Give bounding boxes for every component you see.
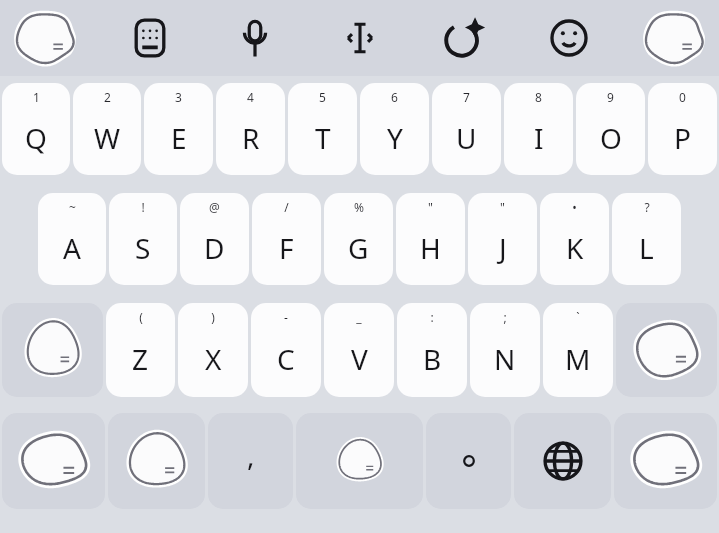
- staticText: Q: [25, 119, 47, 157]
- button[interactable]: /: [252, 193, 321, 285]
- staticText: 5: [319, 89, 326, 105]
- staticText: O: [600, 119, 622, 157]
- button[interactable]: Backspace: [616, 303, 717, 397]
- staticText: P: [674, 119, 691, 157]
- staticText: G: [348, 229, 369, 267]
- button[interactable]: •: [540, 193, 609, 285]
- staticText: 3: [175, 89, 182, 105]
- staticText: !: [141, 199, 145, 215]
- button[interactable]: Sticker suggestion: [643, 7, 705, 69]
- staticText: •: [572, 199, 577, 215]
- staticText: ): [211, 309, 215, 325]
- staticText: L: [639, 229, 654, 267]
- button[interactable]: :: [397, 303, 467, 397]
- staticText: J: [499, 229, 507, 267]
- staticText: :: [430, 309, 434, 325]
- button[interactable]: 9: [576, 83, 645, 175]
- staticText: A: [63, 229, 81, 267]
- button[interactable]: ": [468, 193, 537, 285]
- button[interactable]: -: [251, 303, 321, 397]
- staticText: 1: [33, 89, 40, 105]
- button[interactable]: 1: [2, 83, 70, 175]
- staticText: K: [566, 229, 584, 267]
- staticText: I: [534, 119, 544, 157]
- staticText: 0: [679, 89, 686, 105]
- staticText: 2: [104, 89, 111, 105]
- staticText: 8: [535, 89, 542, 105]
- staticText: %: [354, 199, 364, 215]
- button[interactable]: 2: [73, 83, 141, 175]
- button[interactable]: Voice input: [224, 7, 286, 69]
- button[interactable]: 5: [288, 83, 357, 175]
- staticText: /: [284, 199, 289, 215]
- staticText: D: [204, 229, 225, 267]
- button[interactable]: Text editing: [329, 7, 391, 69]
- button[interactable]: Enter: [614, 413, 717, 509]
- staticText: E: [171, 119, 187, 157]
- button[interactable]: ?: [612, 193, 681, 285]
- staticText: 6: [391, 89, 398, 105]
- button[interactable]: %: [324, 193, 393, 285]
- staticText: 4: [247, 89, 254, 105]
- button[interactable]: Emoji keyboard: [108, 413, 205, 509]
- staticText: (: [139, 309, 143, 325]
- staticText: H: [420, 229, 441, 267]
- staticText: R: [242, 119, 260, 157]
- staticText: 9: [607, 89, 614, 105]
- button[interactable]: 8: [504, 83, 573, 175]
- staticText: S: [135, 229, 151, 267]
- button[interactable]: Smart compose: [433, 7, 495, 69]
- staticText: C: [277, 340, 295, 378]
- button[interactable]: Change language: [514, 413, 611, 509]
- button[interactable]: @: [180, 193, 249, 285]
- button[interactable]: Emoji: [538, 7, 600, 69]
- button[interactable]: ": [396, 193, 465, 285]
- staticText: M: [565, 340, 591, 378]
- staticText: V: [351, 340, 368, 378]
- staticText: W: [94, 119, 121, 157]
- button[interactable]: ;: [470, 303, 540, 397]
- staticText: ;: [503, 309, 507, 325]
- button[interactable]: 3: [144, 83, 213, 175]
- staticText: ~: [69, 199, 76, 215]
- button[interactable]: 0: [648, 83, 717, 175]
- button[interactable]: Sticker suggestion: [14, 7, 76, 69]
- button[interactable]: Symbols: [2, 413, 105, 509]
- button[interactable]: 7: [432, 83, 501, 175]
- button[interactable]: 6: [360, 83, 429, 175]
- staticText: ,: [247, 436, 255, 474]
- staticText: `: [576, 309, 580, 325]
- button[interactable]: 4: [216, 83, 285, 175]
- staticText: -: [284, 309, 288, 325]
- button[interactable]: Keyboard settings: [119, 7, 181, 69]
- staticText: ?: [644, 199, 650, 215]
- staticText: ": [428, 199, 433, 215]
- staticText: @: [209, 199, 220, 215]
- staticText: F: [279, 229, 294, 267]
- button[interactable]: _: [324, 303, 394, 397]
- staticText: N: [494, 340, 516, 378]
- staticText: X: [205, 340, 222, 378]
- button[interactable]: Space: [296, 413, 423, 509]
- button[interactable]: Comma: [208, 413, 293, 509]
- button[interactable]: ): [178, 303, 248, 397]
- button[interactable]: ~: [38, 193, 106, 285]
- button[interactable]: `: [543, 303, 613, 397]
- staticText: U: [456, 119, 477, 157]
- button[interactable]: Shift: [2, 303, 103, 397]
- staticText: T: [315, 119, 331, 157]
- button[interactable]: Period: [426, 413, 511, 509]
- button[interactable]: !: [109, 193, 177, 285]
- staticText: Y: [387, 119, 403, 157]
- staticText: Z: [132, 340, 149, 378]
- staticText: ": [500, 199, 505, 215]
- staticText: B: [423, 340, 442, 378]
- staticText: _: [356, 309, 362, 325]
- button[interactable]: (: [106, 303, 175, 397]
- staticText: 7: [463, 89, 470, 105]
